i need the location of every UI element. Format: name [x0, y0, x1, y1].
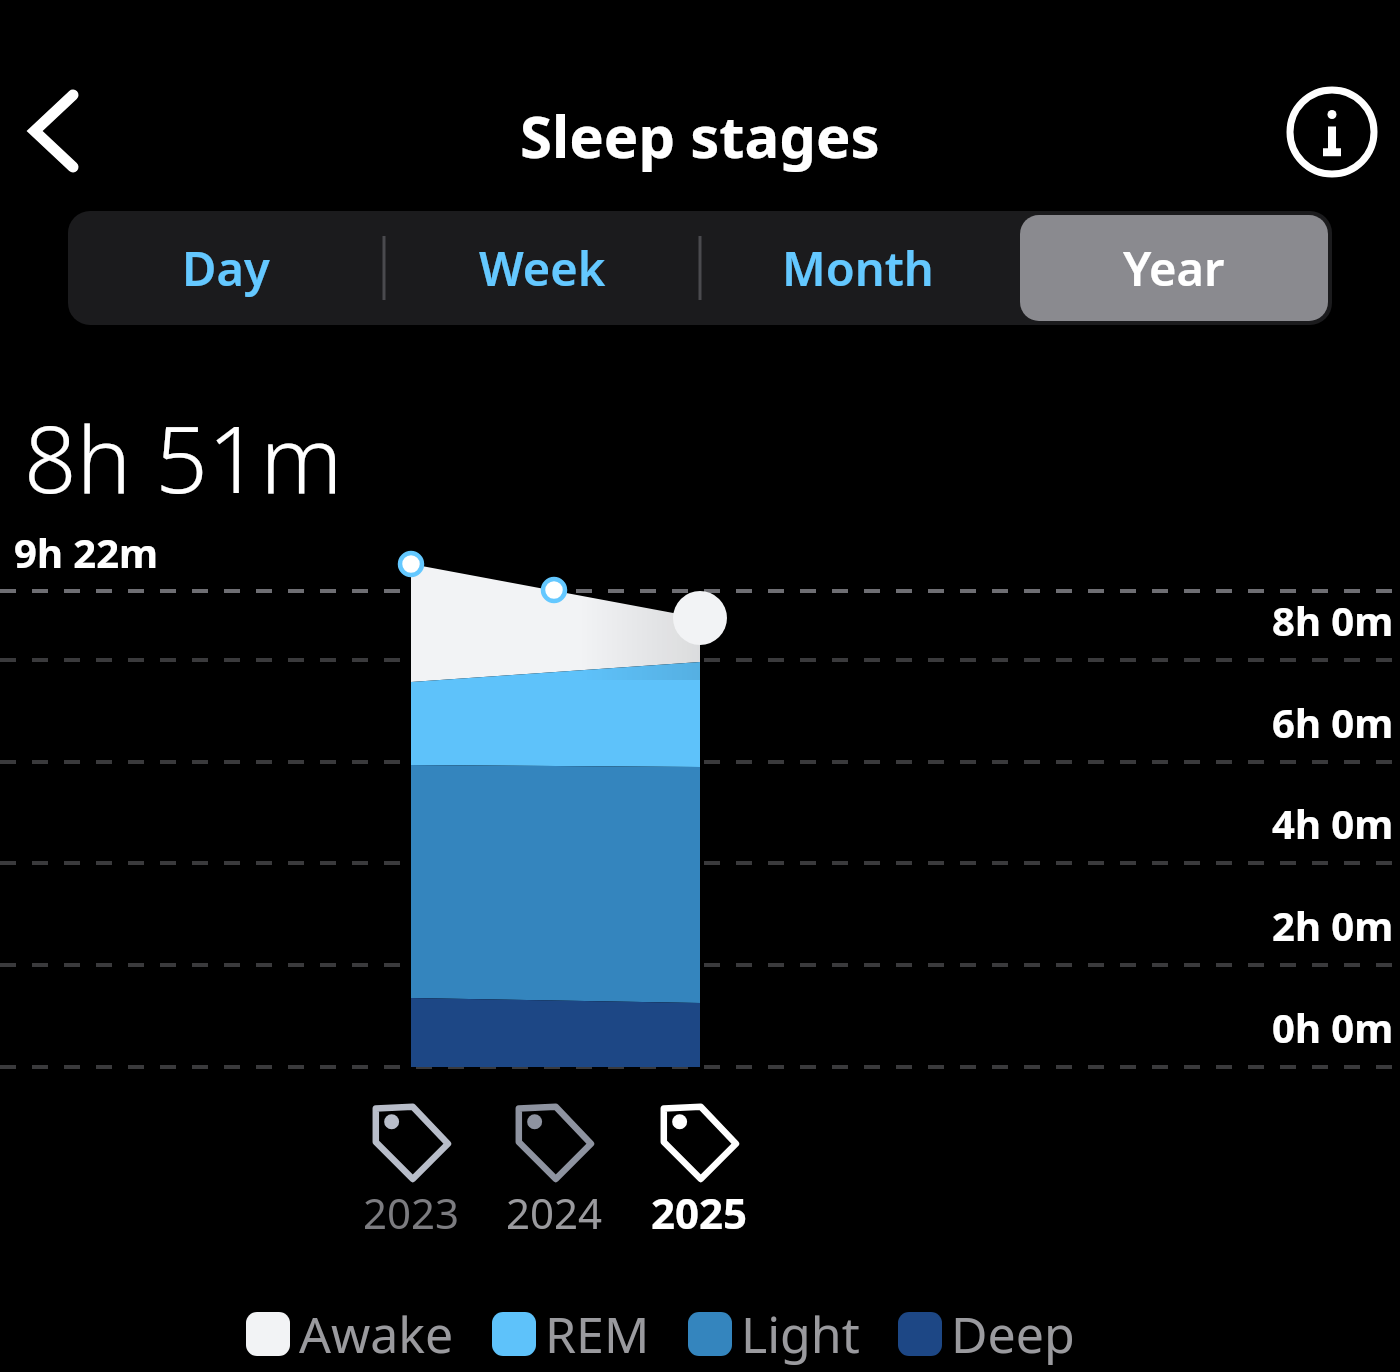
button[interactable]: Info: [1276, 76, 1388, 188]
button[interactable]: REM: [492, 1300, 650, 1368]
staticText: Month: [782, 236, 934, 300]
staticText: 2025: [651, 1184, 748, 1241]
staticText: 8h 0m: [1272, 593, 1394, 647]
staticText: Year: [1123, 236, 1225, 300]
button[interactable]: Deep: [898, 1300, 1075, 1368]
staticText: 4h 0m: [1272, 796, 1394, 850]
staticText: 2h 0m: [1272, 898, 1394, 952]
button[interactable]: Month: [704, 215, 1012, 321]
staticText: 9h 22m: [14, 525, 159, 579]
staticText: 8h 51m: [24, 395, 343, 520]
button[interactable]: Back: [0, 75, 110, 187]
staticText: 2023: [363, 1184, 460, 1241]
staticText: 0h 0m: [1272, 1000, 1394, 1054]
staticText: Day: [182, 236, 270, 300]
staticText: Deep: [951, 1300, 1075, 1368]
staticText: 6h 0m: [1272, 695, 1394, 749]
staticText: Light: [741, 1300, 860, 1368]
button[interactable]: Day: [72, 215, 380, 321]
button[interactable]: 2024: [484, 1098, 624, 1243]
button[interactable]: Week: [388, 215, 696, 321]
button[interactable]: 2023: [341, 1098, 481, 1243]
staticText: Sleep stages: [520, 96, 880, 175]
staticText: REM: [545, 1300, 650, 1368]
staticText: 2024: [506, 1184, 603, 1241]
button[interactable]: Awake: [246, 1300, 454, 1368]
button[interactable]: Light: [688, 1300, 860, 1368]
button[interactable]: Year: [1020, 215, 1328, 321]
button[interactable]: 2025: [629, 1098, 769, 1243]
staticText: Awake: [299, 1300, 454, 1368]
staticText: Week: [479, 236, 606, 300]
